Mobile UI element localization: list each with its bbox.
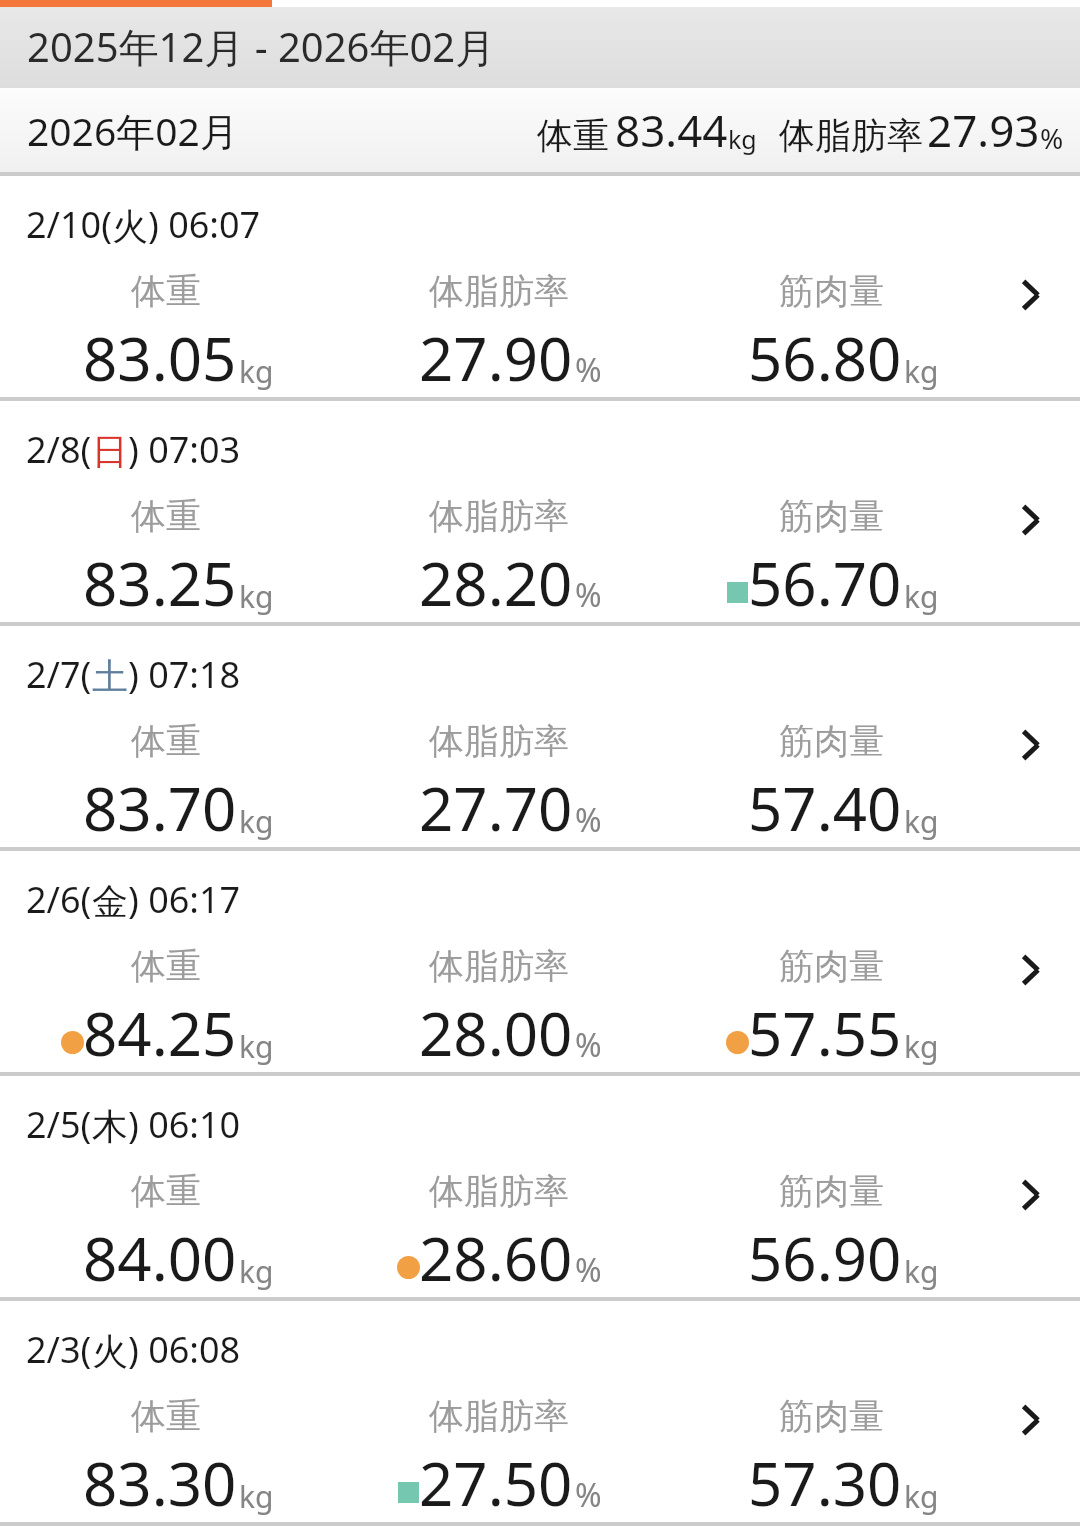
staticText: 84.00 xyxy=(83,1217,237,1297)
staticText: 28.60 xyxy=(419,1217,573,1297)
staticText: 体重 xyxy=(131,719,201,763)
staticText: ) 06:10 xyxy=(128,1100,241,1149)
staticText: kg xyxy=(728,122,757,156)
staticText: 83.05 xyxy=(83,317,237,397)
staticText: 体重 xyxy=(131,1394,201,1438)
staticText: 筋肉量 xyxy=(779,944,884,988)
staticText: 体重 xyxy=(131,494,201,538)
staticText: 27.70 xyxy=(419,767,573,847)
staticText: 27.90 xyxy=(419,317,573,397)
button[interactable]: 詳細を開く xyxy=(1002,717,1058,773)
staticText: ) 06:17 xyxy=(128,875,241,924)
staticText: 土 xyxy=(92,654,128,699)
staticText: 2/10( xyxy=(26,200,112,249)
staticText: kg xyxy=(904,801,939,842)
staticText: % xyxy=(575,1473,602,1517)
staticText: kg xyxy=(239,1026,274,1067)
staticText: 84.25 xyxy=(83,992,237,1072)
staticText: 56.80 xyxy=(748,317,902,397)
staticText: 体重 xyxy=(131,269,201,313)
staticText: 体脂肪率 xyxy=(429,1394,569,1438)
button[interactable]: 2/5( xyxy=(0,1076,1080,1297)
staticText: 体脂肪率 xyxy=(779,113,923,158)
staticText: 2/7( xyxy=(26,650,92,699)
staticText: 筋肉量 xyxy=(779,1394,884,1438)
staticText: ) 06:07 xyxy=(148,200,261,249)
staticText: % xyxy=(575,573,602,617)
staticText: kg xyxy=(904,1476,939,1517)
staticText: 金 xyxy=(92,879,128,924)
staticText: 体重 xyxy=(131,1169,201,1213)
staticText: 2/3( xyxy=(26,1325,92,1374)
staticText: 体脂肪率 xyxy=(429,1169,569,1213)
staticText: 83.25 xyxy=(83,542,237,622)
staticText: % xyxy=(575,798,602,842)
button[interactable]: 詳細を開く xyxy=(1002,1392,1058,1448)
staticText: 2025年12月 - 2026年02月 xyxy=(27,19,496,74)
button[interactable]: 2/7( xyxy=(0,626,1080,847)
staticText: 筋肉量 xyxy=(779,494,884,538)
staticText: 体脂肪率 xyxy=(429,494,569,538)
staticText: 体重 xyxy=(537,113,609,158)
staticText: 筋肉量 xyxy=(779,269,884,313)
staticText: % xyxy=(575,1248,602,1292)
staticText: 筋肉量 xyxy=(779,1169,884,1213)
staticText: 83.44 xyxy=(615,100,728,160)
staticText: kg xyxy=(239,1476,274,1517)
staticText: kg xyxy=(239,351,274,392)
staticText: % xyxy=(575,348,602,392)
staticText: 83.70 xyxy=(83,767,237,847)
staticText: 57.30 xyxy=(748,1442,902,1522)
staticText: ) 07:03 xyxy=(128,425,241,474)
staticText: 体重 xyxy=(131,944,201,988)
button[interactable]: 2/6( xyxy=(0,851,1080,1072)
button[interactable]: 2/3( xyxy=(0,1301,1080,1522)
button[interactable]: 詳細を開く xyxy=(1002,942,1058,998)
staticText: 57.40 xyxy=(748,767,902,847)
staticText: kg xyxy=(904,576,939,617)
staticText: 28.00 xyxy=(419,992,573,1072)
staticText: kg xyxy=(239,576,274,617)
button[interactable]: 2/10( xyxy=(0,176,1080,397)
staticText: 2/6( xyxy=(26,875,92,924)
button[interactable]: 詳細を開く xyxy=(1002,1167,1058,1223)
staticText: 83.30 xyxy=(83,1442,237,1522)
staticText: 体脂肪率 xyxy=(429,719,569,763)
button[interactable]: 詳細を開く xyxy=(1002,492,1058,548)
staticText: 木 xyxy=(92,1104,128,1149)
staticText: 2/5( xyxy=(26,1100,92,1149)
staticText: kg xyxy=(904,351,939,392)
staticText: 2026年02月 xyxy=(27,104,239,157)
staticText: 27.93 xyxy=(927,100,1040,160)
staticText: 27.50 xyxy=(419,1442,573,1522)
button[interactable]: 詳細を開く xyxy=(1002,267,1058,323)
staticText: % xyxy=(1040,119,1064,157)
staticText: 2/8( xyxy=(26,425,92,474)
staticText: 体脂肪率 xyxy=(429,269,569,313)
staticText: 体脂肪率 xyxy=(429,944,569,988)
button[interactable]: 2/8( xyxy=(0,401,1080,622)
staticText: 火 xyxy=(92,1329,128,1374)
staticText: kg xyxy=(904,1251,939,1292)
staticText: 56.70 xyxy=(748,542,902,622)
staticText: kg xyxy=(239,801,274,842)
staticText: 火 xyxy=(112,204,148,249)
staticText: 日 xyxy=(92,429,128,474)
staticText: % xyxy=(575,1023,602,1067)
staticText: kg xyxy=(904,1026,939,1067)
button[interactable]: 2026年02月 xyxy=(0,88,1080,172)
staticText: 56.90 xyxy=(748,1217,902,1297)
staticText: ) 06:08 xyxy=(128,1325,241,1374)
button[interactable]: 2025年12月 - 2026年02月 xyxy=(0,7,1080,88)
staticText: 筋肉量 xyxy=(779,719,884,763)
staticText: kg xyxy=(239,1251,274,1292)
staticText: 57.55 xyxy=(748,992,902,1072)
staticText: ) 07:18 xyxy=(128,650,241,699)
staticText: 28.20 xyxy=(419,542,573,622)
